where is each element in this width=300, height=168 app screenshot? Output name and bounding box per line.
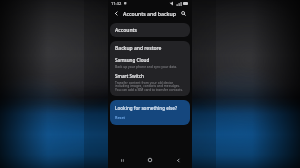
staticText: Reset	[115, 115, 126, 120]
staticText: 11:32	[111, 1, 122, 6]
button[interactable]: Recents	[108, 152, 136, 168]
button[interactable]: Home	[136, 152, 164, 168]
staticText: Transfer content from your old device, i…	[115, 80, 185, 92]
button[interactable]: Back	[164, 152, 192, 168]
button[interactable]: Samsung Cloud	[110, 57, 190, 68]
button[interactable]: Smart Switch	[110, 73, 190, 92]
staticText: Accounts and backup	[123, 10, 179, 17]
staticText: Samsung Cloud	[115, 57, 150, 63]
button[interactable]: Search	[179, 9, 188, 18]
staticText: Looking for something else?	[115, 105, 178, 111]
button[interactable]: Looking for something else?	[110, 100, 190, 125]
staticText: Back up your phone and sync your data.	[115, 64, 178, 68]
button[interactable]: Back	[112, 9, 121, 18]
staticText: Smart Switch	[115, 73, 144, 79]
staticText: Backup and restore	[115, 45, 162, 52]
staticText: Accounts	[115, 27, 137, 34]
button[interactable]: Accounts	[110, 23, 190, 37]
